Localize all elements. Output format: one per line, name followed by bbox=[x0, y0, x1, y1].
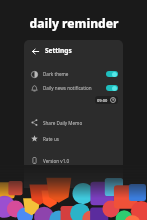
staticText: 09:00 bbox=[97, 98, 108, 103]
staticText: Daily news notification bbox=[43, 85, 106, 91]
button[interactable]: Version v1.0 bbox=[24, 154, 123, 167]
staticText: Version v1.0 bbox=[43, 158, 70, 164]
staticText: Settings bbox=[45, 46, 72, 55]
staticText: Dark theme bbox=[43, 71, 106, 77]
button[interactable]: Dark theme bbox=[24, 67, 123, 81]
staticText: daily reminder bbox=[29, 15, 119, 31]
staticText: Share Daily Memo bbox=[43, 120, 83, 126]
button[interactable]: Daily news notification bbox=[24, 81, 123, 95]
staticText: Rate us bbox=[43, 136, 59, 142]
button[interactable]: Rate us bbox=[24, 132, 123, 145]
button[interactable]: Back bbox=[29, 45, 41, 57]
button[interactable]: Share Daily Memo bbox=[24, 116, 123, 129]
button[interactable]: Dark theme bbox=[106, 71, 118, 77]
button[interactable]: Notification time bbox=[95, 96, 118, 104]
button[interactable]: Daily news notification bbox=[106, 85, 118, 91]
